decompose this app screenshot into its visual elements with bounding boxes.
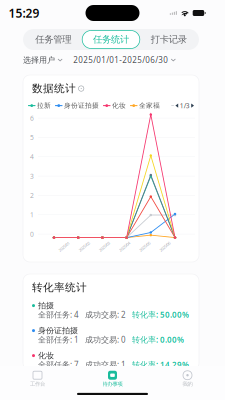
staticText: 工作台 [30,381,45,387]
staticText: 全部任务: 7 [38,359,79,370]
staticText: 打卡记录 [151,34,187,45]
staticText: 身份证拍摄 [64,101,99,110]
staticText: 任务管理 [35,34,71,45]
staticText: 15:29 [8,5,39,21]
staticText: 选择用户 [23,55,55,65]
staticText: 2025/04 [118,244,131,249]
staticText: 待办事项 [102,381,122,387]
staticText: 成功交易: 1 [85,359,126,370]
staticText: 转化率: 50.00% [132,309,189,320]
button[interactable]: 工作台 [0,371,75,387]
staticText: 1/3 [180,101,190,110]
staticText: 2025/01 [58,244,71,249]
button[interactable]: 任务统计 [82,30,140,48]
staticText: 2025/01/01-2025/06/30 [73,55,168,65]
button[interactable]: 任务管理 [24,30,82,48]
staticText: 任务统计 [93,34,129,45]
staticText: 拍摄 [38,301,54,310]
button[interactable]: 我的 [150,371,225,387]
staticText: 2 [30,191,34,200]
button[interactable]: 待办事项 [75,371,150,387]
staticText: 全部任务: 4 [38,309,79,320]
staticText: 2025/06 [158,244,171,249]
staticText: 数据统计 [32,82,76,95]
staticText: 5 [30,133,34,142]
staticText: 全家福 [139,101,160,110]
staticText: 2025/02 [78,244,91,249]
staticText: 0 [30,230,34,239]
staticText: 化妆 [112,101,126,110]
staticText: 3 [30,172,34,181]
staticText: 转化率: 0.00% [132,334,184,345]
button[interactable]: 打卡记录 [140,30,197,48]
button[interactable]: 选择用户 [23,55,62,65]
staticText: 身份证拍摄 [38,326,78,335]
button[interactable]: 2025/01/01-2025/06/30 [73,55,175,65]
staticText: 转化率: 14.29% [132,359,189,370]
staticText: 化妆 [38,351,54,360]
staticText: 2025/05 [138,244,151,249]
staticText: 转化率统计 [32,281,87,294]
staticText: 1 [30,210,34,219]
staticText: 4 [30,152,34,161]
staticText: 我的 [182,381,192,387]
staticText: 2025/03 [98,244,111,249]
staticText: 成功交易: 2 [85,309,126,320]
staticText: 全部任务: 1 [38,334,79,345]
staticText: 成功交易: 0 [85,334,126,345]
staticText: 拉新 [37,101,51,110]
staticText: 6 [30,114,34,123]
